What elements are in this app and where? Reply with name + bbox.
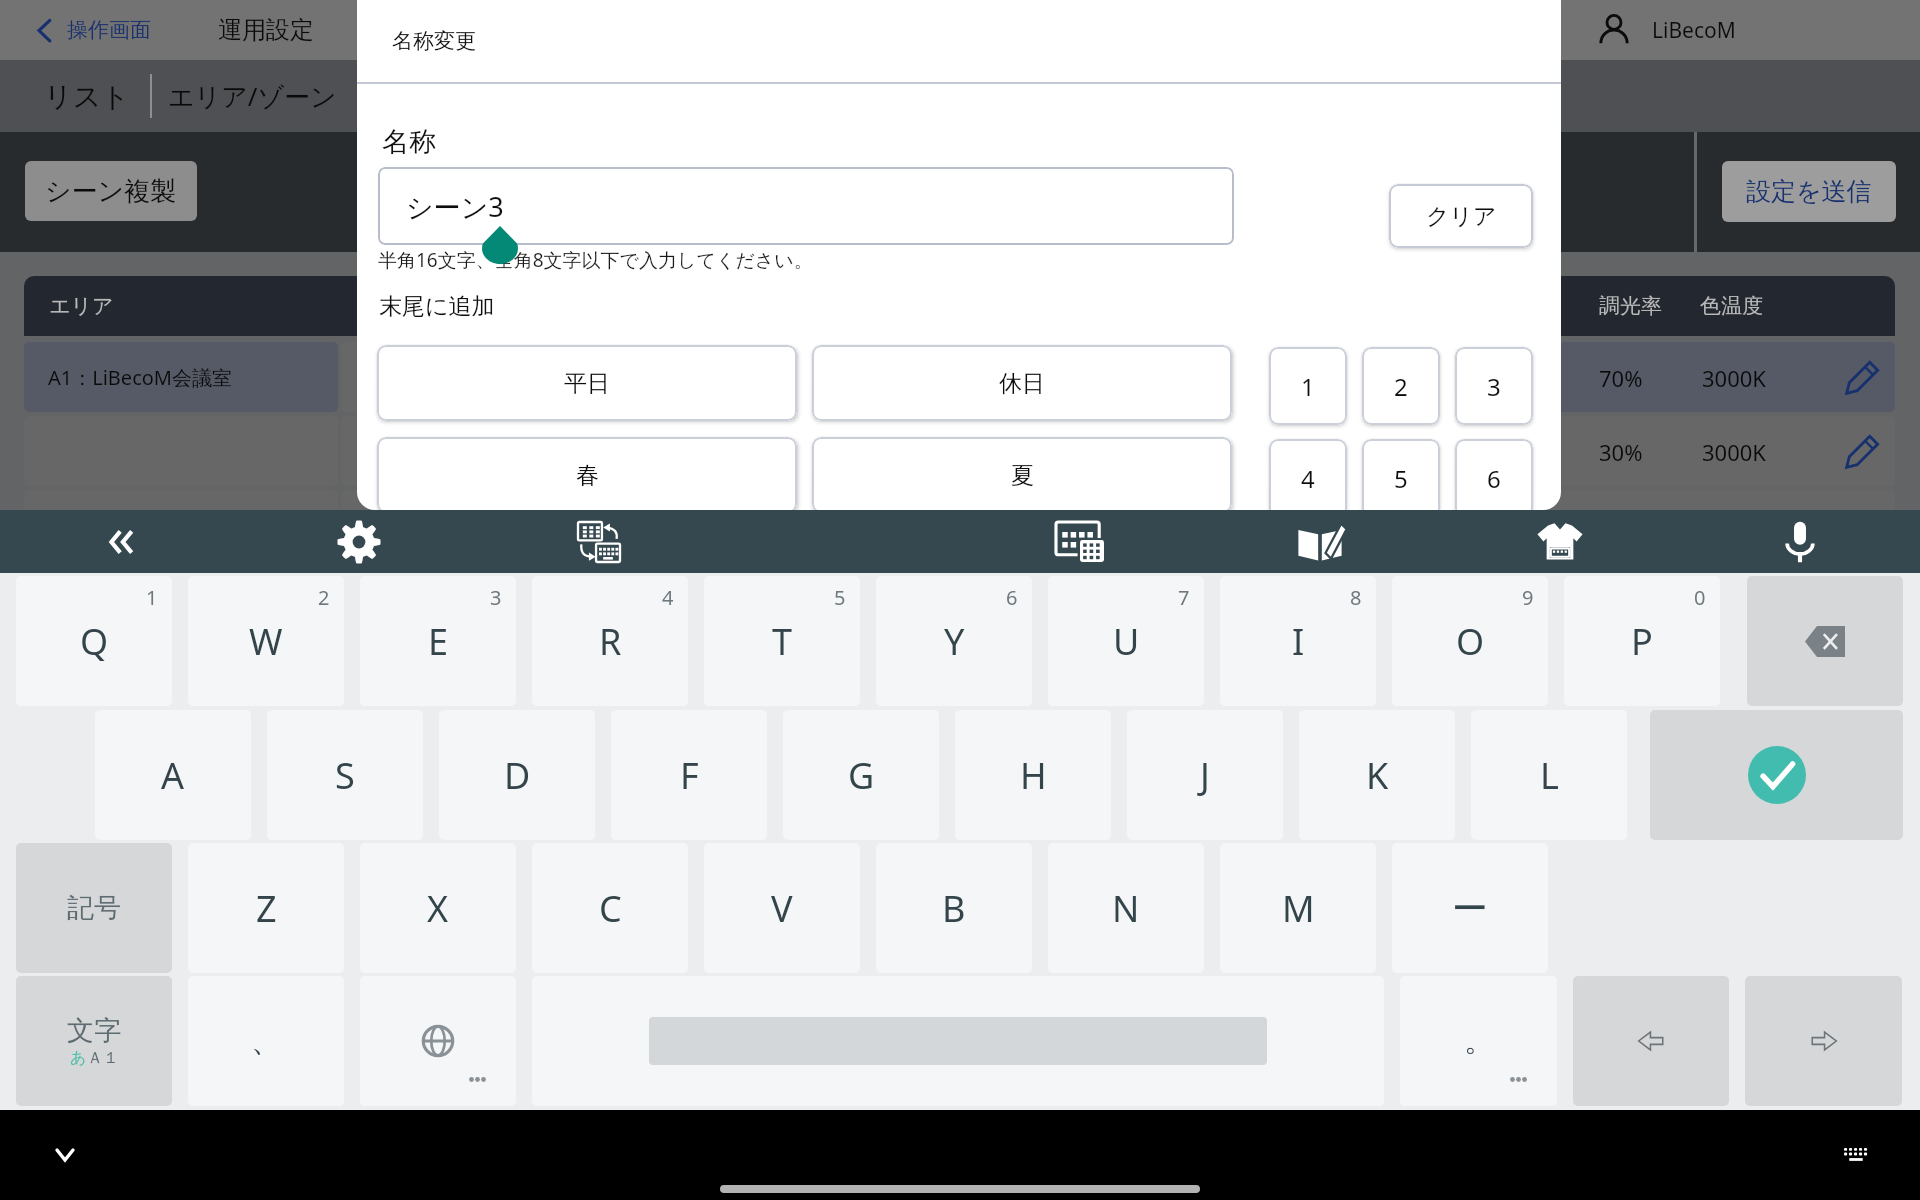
staticText: S	[335, 751, 355, 800]
staticText: 1	[1301, 370, 1315, 403]
button[interactable]: 2	[1362, 347, 1440, 425]
button[interactable]: 5	[704, 576, 860, 706]
staticText: 70%	[1599, 363, 1643, 393]
staticText: 平日	[564, 369, 610, 398]
button[interactable]	[424, 490, 1895, 560]
button[interactable]: エリア/ゾーン	[168, 78, 337, 114]
button[interactable]: Numeric keypad	[1054, 516, 1106, 568]
staticText: Ａ１	[87, 1048, 119, 1068]
button[interactable]	[1573, 976, 1729, 1106]
button[interactable]: Account	[1594, 10, 1634, 50]
staticText: 0	[1694, 584, 1706, 611]
button[interactable]: G	[783, 710, 939, 840]
button[interactable]: 0	[1564, 576, 1720, 706]
button[interactable]: 4	[532, 576, 688, 706]
button[interactable]: ー	[1392, 843, 1548, 973]
button[interactable]: 2	[188, 576, 344, 706]
button[interactable]: 休日	[812, 345, 1232, 421]
button[interactable]: 。	[1400, 976, 1557, 1106]
staticText: E	[428, 617, 449, 666]
button[interactable]: K	[1299, 710, 1455, 840]
button[interactable]: Z	[188, 843, 344, 973]
button[interactable]: 夏	[812, 437, 1232, 510]
button[interactable]: クリア	[1389, 184, 1533, 248]
button[interactable]: 春	[377, 437, 797, 510]
button[interactable]: C	[532, 843, 688, 973]
staticText: ー	[1452, 886, 1488, 931]
button[interactable]: 6	[1455, 439, 1533, 510]
button[interactable]: 文字	[16, 976, 172, 1106]
staticText: 夏	[1011, 461, 1034, 490]
button[interactable]: X	[360, 843, 516, 973]
button[interactable]: 6	[876, 576, 1032, 706]
button[interactable]: Back	[30, 15, 60, 45]
button[interactable]: 70%	[424, 342, 1895, 412]
staticText: F	[680, 751, 699, 800]
button[interactable]: D	[439, 710, 595, 840]
staticText: シーン3	[406, 188, 504, 225]
button[interactable]: 9	[1392, 576, 1548, 706]
button[interactable]	[341, 342, 421, 412]
button[interactable]	[1747, 576, 1903, 706]
button[interactable]: Collapse keyboard	[92, 516, 144, 568]
button[interactable]: J	[1127, 710, 1283, 840]
button[interactable]: 1	[1269, 347, 1347, 425]
staticText: I	[1292, 617, 1305, 666]
button[interactable]: Keyboard settings	[333, 516, 385, 568]
staticText: 3000K	[1702, 363, 1766, 393]
button[interactable]: リスト	[44, 79, 130, 114]
button[interactable]: 3	[1455, 347, 1533, 425]
staticText: T	[772, 617, 793, 666]
button[interactable]: 5	[1362, 439, 1440, 510]
button[interactable]	[532, 976, 1384, 1106]
button[interactable]: 4	[1269, 439, 1347, 510]
button[interactable]	[341, 490, 421, 560]
staticText: U	[1113, 617, 1140, 666]
button[interactable]: A1：LiBecoM会議室	[24, 342, 338, 412]
button[interactable]: B	[876, 843, 1032, 973]
button[interactable]: Switch input mode	[573, 516, 625, 568]
staticText: 3	[490, 584, 502, 611]
button[interactable]: S	[267, 710, 423, 840]
button[interactable]: 7	[1048, 576, 1204, 706]
staticText: 6	[1487, 462, 1501, 495]
button[interactable]: 操作画面	[67, 17, 151, 43]
staticText: C	[599, 884, 622, 933]
button[interactable]: User dictionary	[1294, 516, 1346, 568]
button[interactable]: 記号	[16, 843, 172, 973]
button[interactable]: 3	[360, 576, 516, 706]
button[interactable]: Voice input	[1774, 516, 1826, 568]
staticText: 4	[1301, 462, 1315, 495]
button[interactable]: シーン複製	[25, 161, 197, 221]
button[interactable]: 、	[188, 976, 344, 1106]
button[interactable]	[1650, 710, 1903, 840]
staticText: 文字	[67, 1014, 121, 1048]
button[interactable]	[341, 416, 421, 486]
button[interactable]	[1745, 976, 1902, 1106]
button[interactable]: M	[1220, 843, 1376, 973]
button[interactable]: V	[704, 843, 860, 973]
button[interactable]: Hide keyboard	[45, 1135, 85, 1175]
staticText: O	[1456, 617, 1485, 666]
button[interactable]: 1	[16, 576, 172, 706]
button[interactable]: 30%	[424, 416, 1895, 486]
staticText: D	[504, 751, 531, 800]
button[interactable]: 8	[1220, 576, 1376, 706]
button[interactable]: L	[1471, 710, 1627, 840]
button[interactable]: A	[95, 710, 251, 840]
button[interactable]	[24, 490, 338, 560]
button[interactable]: H	[955, 710, 1111, 840]
button[interactable]: Theme	[1534, 516, 1586, 568]
button[interactable]: N	[1048, 843, 1204, 973]
staticText: X	[427, 884, 449, 933]
button[interactable]: シーン3	[378, 167, 1234, 245]
button[interactable]: F	[611, 710, 767, 840]
staticText: Y	[944, 617, 965, 666]
staticText: P	[1631, 617, 1653, 666]
button[interactable]: 設定を送信	[1722, 161, 1896, 222]
button[interactable]	[360, 976, 516, 1106]
button[interactable]: 平日	[377, 345, 797, 421]
button[interactable]: Switch keyboard	[1836, 1135, 1876, 1175]
staticText: 。	[1464, 1022, 1494, 1060]
